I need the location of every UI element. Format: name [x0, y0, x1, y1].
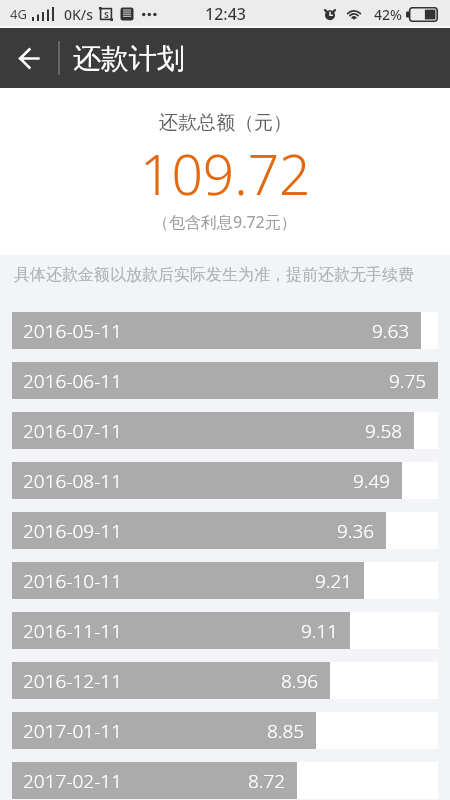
staticText: 109.72: [140, 136, 311, 211]
staticText: 2016-06-11: [23, 368, 123, 394]
button[interactable]: 2016-12-11: [0, 662, 450, 712]
staticText: 9.75: [389, 368, 427, 394]
staticText: 8.85: [267, 718, 305, 744]
staticText: 2017-01-11: [23, 718, 123, 744]
staticText: 还款总额（元）: [159, 111, 292, 135]
staticText: S: [104, 8, 109, 20]
staticText: 还款计划: [73, 41, 185, 76]
staticText: 2016-08-11: [23, 468, 123, 494]
staticText: 9.49: [353, 468, 391, 494]
staticText: 2016-09-11: [23, 518, 123, 544]
button[interactable]: 2016-06-11: [0, 362, 450, 412]
staticText: 4G: [10, 5, 27, 23]
button[interactable]: 2016-05-11: [0, 312, 450, 362]
button[interactable]: 2017-01-11: [0, 712, 450, 762]
staticText: 9.21: [315, 568, 353, 594]
staticText: 2016-12-11: [23, 668, 123, 694]
button[interactable]: 2016-11-11: [0, 612, 450, 662]
staticText: 9.58: [365, 418, 403, 444]
button[interactable]: 2016-07-11: [0, 412, 450, 462]
staticText: 2017-02-11: [23, 768, 123, 794]
staticText: 0K/s: [64, 5, 94, 24]
button[interactable]: 2016-10-11: [0, 562, 450, 612]
staticText: 具体还款金额以放款后实际发生为准，提前还款无手续费: [14, 265, 414, 285]
button[interactable]: Back: [0, 28, 58, 88]
staticText: 2016-10-11: [23, 568, 123, 594]
staticText: 2016-05-11: [23, 318, 123, 344]
button[interactable]: 2016-09-11: [0, 512, 450, 562]
staticText: 2016-07-11: [23, 418, 123, 444]
button[interactable]: 2017-02-11: [0, 762, 450, 800]
staticText: 2016-11-11: [23, 618, 123, 644]
staticText: 12:43: [205, 3, 246, 25]
button[interactable]: 2016-08-11: [0, 462, 450, 512]
staticText: 9.63: [372, 318, 410, 344]
staticText: 8.96: [281, 668, 319, 694]
staticText: （包含利息9.72元）: [153, 211, 297, 233]
staticText: 42%: [374, 5, 402, 24]
staticText: 9.11: [301, 618, 339, 644]
staticText: 9.36: [337, 518, 375, 544]
staticText: 8.72: [248, 768, 286, 794]
